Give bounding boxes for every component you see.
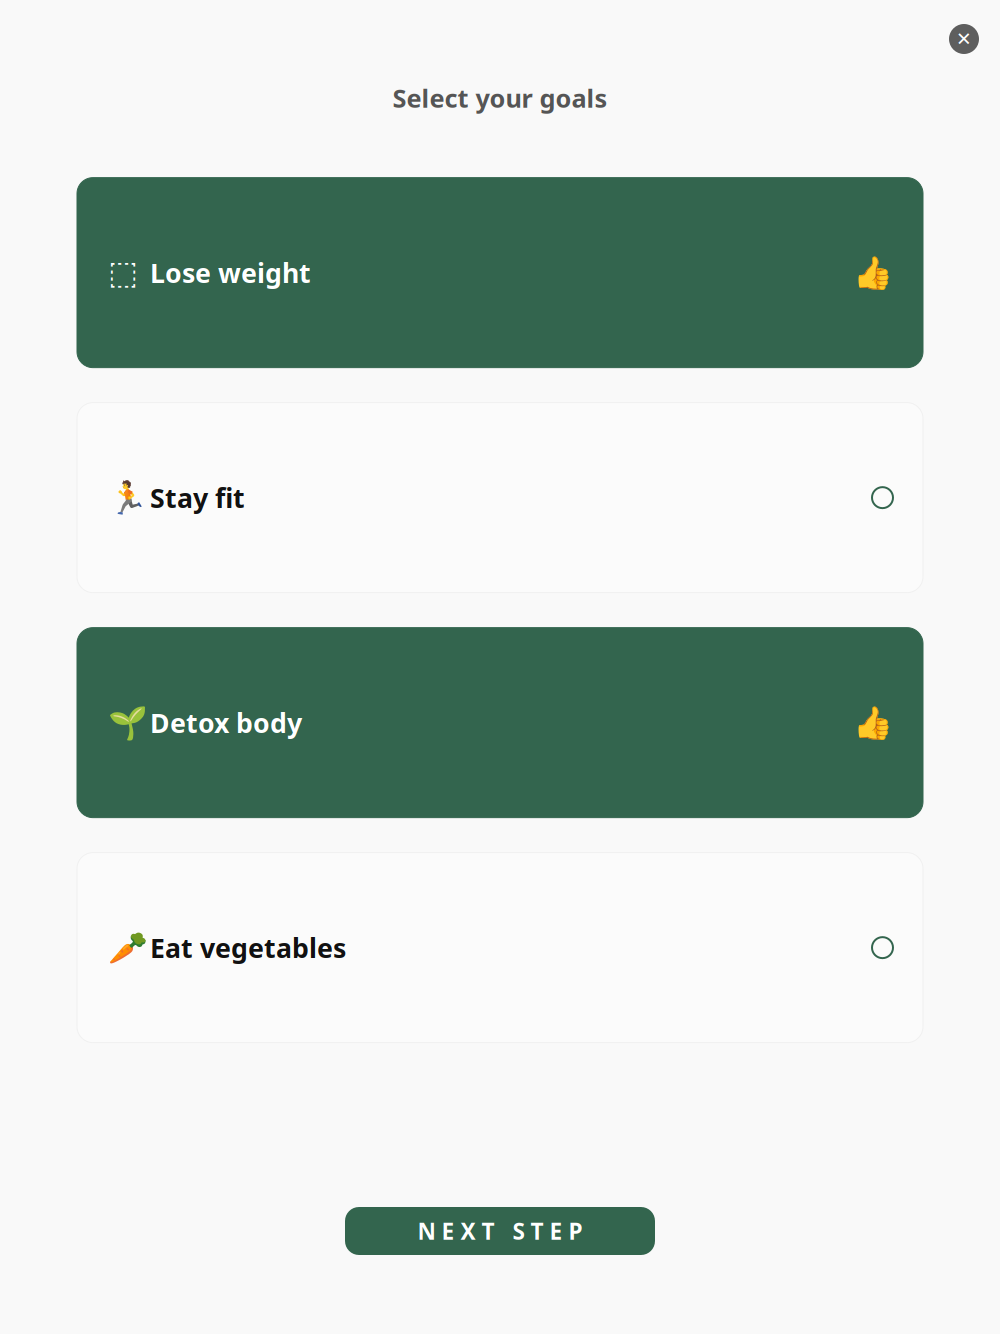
- staticText: Detox body: [150, 705, 302, 740]
- button[interactable]: 🥕: [77, 853, 923, 1043]
- staticText: N E X T S T E P: [417, 1216, 582, 1246]
- staticText: 🌱: [108, 704, 148, 741]
- staticText: ✕: [956, 28, 972, 50]
- staticText: 🏃: [108, 479, 148, 516]
- staticText: 👍: [853, 254, 893, 291]
- staticText: ⬚: [108, 254, 138, 291]
- button[interactable]: 🏃: [77, 403, 923, 593]
- button[interactable]: Close: [942, 17, 986, 61]
- staticText: 🥕: [108, 929, 148, 966]
- button[interactable]: N E X T S T E P: [345, 1207, 655, 1255]
- button[interactable]: ⬚: [77, 178, 923, 368]
- staticText: Select your goals: [392, 81, 607, 115]
- staticText: Lose weight: [150, 255, 311, 290]
- button[interactable]: 🌱: [77, 628, 923, 818]
- staticText: 👍: [853, 704, 893, 741]
- staticText: Eat vegetables: [150, 930, 346, 965]
- staticText: Stay fit: [150, 480, 245, 515]
